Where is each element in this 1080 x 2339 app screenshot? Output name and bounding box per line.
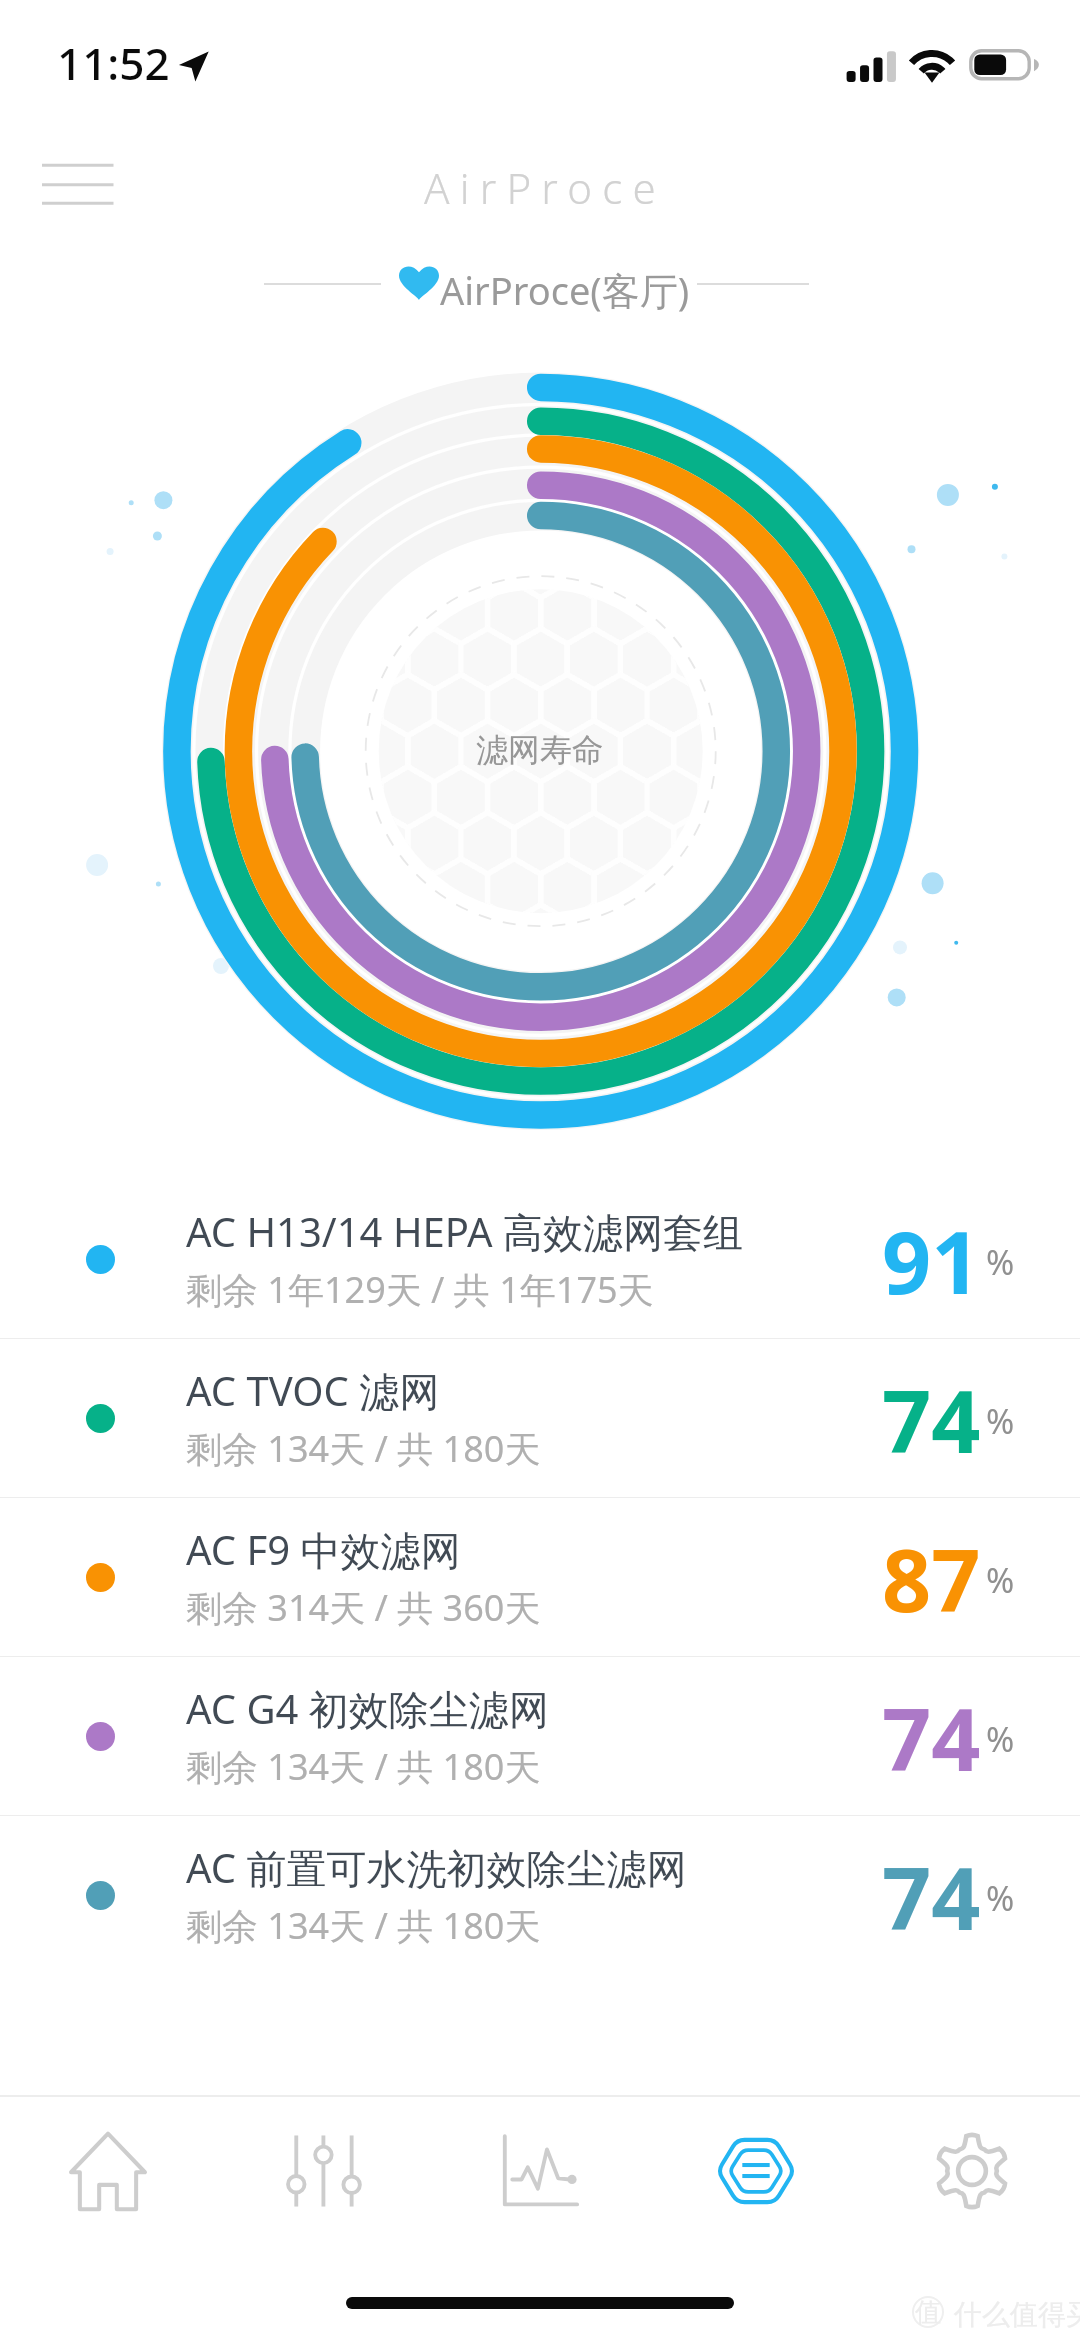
staticText: % xyxy=(986,1239,1015,1285)
staticText: % xyxy=(986,1875,1015,1921)
staticText: 74 xyxy=(882,1679,981,1796)
staticText: 剩余 314天 / 共 360天 xyxy=(186,1583,541,1632)
staticText: 91 xyxy=(882,1202,981,1319)
staticText: AC TVOC 滤网 xyxy=(186,1363,440,1418)
staticText: AC 前置可水洗初效除尘滤网 xyxy=(186,1840,687,1895)
staticText: 值 xyxy=(915,2296,941,2328)
button[interactable]: Home xyxy=(0,2097,216,2245)
button[interactable]: Statistics xyxy=(432,2097,648,2245)
button[interactable]: AC 前置可水洗初效除尘滤网 xyxy=(0,1816,1080,1975)
staticText: 74 xyxy=(882,1838,981,1955)
staticText: 74 xyxy=(882,1361,981,1478)
button[interactable]: Menu xyxy=(28,148,128,222)
staticText: AC H13/14 HEPA 高效滤网套组 xyxy=(186,1204,743,1259)
staticText: 剩余 134天 / 共 180天 xyxy=(186,1742,541,1791)
button[interactable]: Filters xyxy=(648,2097,864,2245)
staticText: % xyxy=(986,1557,1015,1603)
staticText: % xyxy=(986,1398,1015,1444)
button[interactable]: AC TVOC 滤网 xyxy=(0,1339,1080,1498)
button[interactable]: Settings xyxy=(864,2097,1080,2245)
staticText: 什么值得买 xyxy=(954,2297,1080,2332)
button[interactable]: AC H13/14 HEPA 高效滤网套组 xyxy=(0,1180,1080,1339)
button[interactable]: Controls xyxy=(216,2097,432,2245)
staticText: 剩余 134天 / 共 180天 xyxy=(186,1424,541,1473)
staticText: 11:52 xyxy=(57,33,170,93)
staticText: 剩余 1年129天 / 共 1年175天 xyxy=(186,1265,654,1314)
button[interactable]: AC F9 中效滤网 xyxy=(0,1498,1080,1657)
button[interactable]: AC G4 初效除尘滤网 xyxy=(0,1657,1080,1816)
staticText: 滤网寿命 xyxy=(476,730,604,770)
staticText: AC F9 中效滤网 xyxy=(186,1522,461,1577)
staticText: AC G4 初效除尘滤网 xyxy=(186,1681,549,1736)
staticText: AirProce(客厅) xyxy=(440,264,690,316)
staticText: % xyxy=(986,1716,1015,1762)
staticText: AirProce xyxy=(424,159,666,216)
staticText: 87 xyxy=(882,1520,981,1637)
staticText: 剩余 134天 / 共 180天 xyxy=(186,1901,541,1950)
